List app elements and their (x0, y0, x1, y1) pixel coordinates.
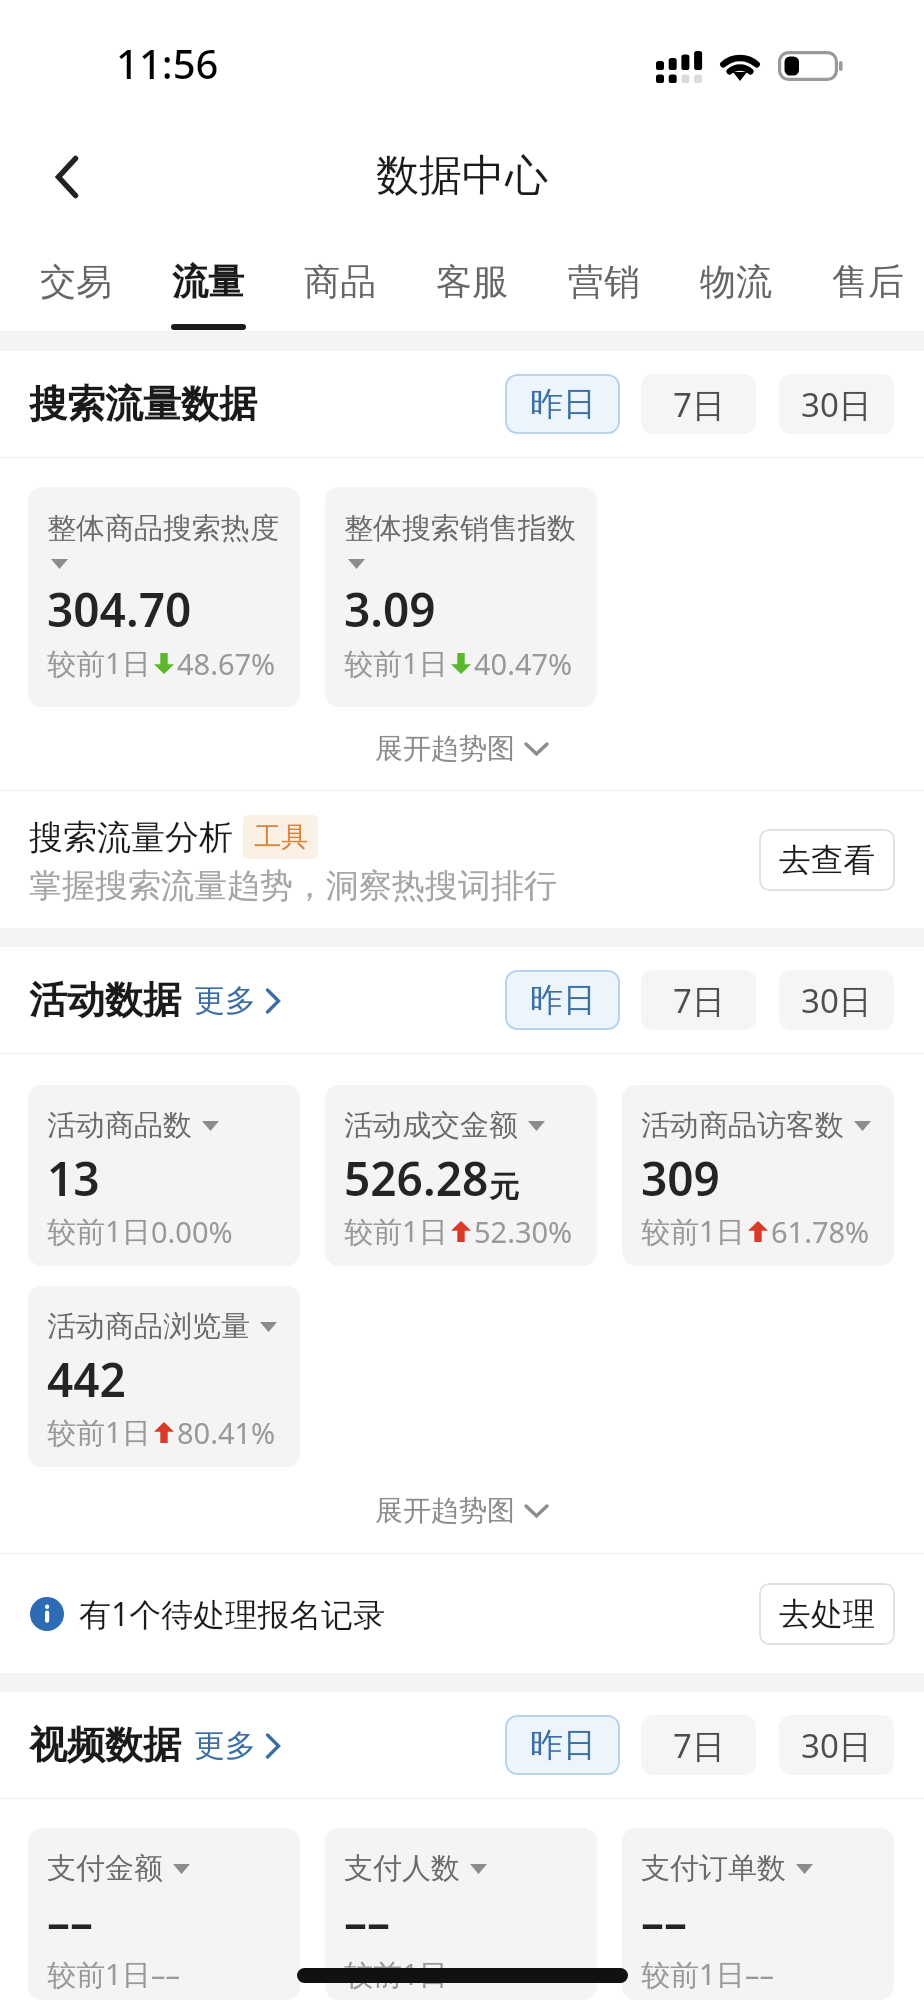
staticText: 309 (641, 1147, 720, 1210)
button[interactable]: 7日 (641, 374, 756, 434)
staticText: 11:56 (116, 36, 219, 90)
staticText: 展开趋势图 (375, 1493, 515, 1528)
button[interactable]: 昨日 (505, 970, 620, 1030)
button[interactable]: 客服 (424, 226, 520, 331)
button[interactable]: 流量 (160, 226, 256, 331)
button[interactable]: 支付订单数 (622, 1828, 894, 2000)
button[interactable]: 昨日 (505, 1715, 620, 1775)
staticText: 较前1日 (47, 1412, 151, 1452)
button[interactable]: 展开趋势图 (0, 707, 924, 790)
staticText: 掌握搜索流量趋势，洞察热搜词排行 (29, 865, 557, 907)
staticText: 较前1日 (344, 643, 448, 683)
button[interactable]: 活动商品访客数 (622, 1085, 894, 1266)
staticText: 去处理 (779, 1594, 875, 1634)
staticText: 支付人数 (344, 1850, 460, 1887)
staticText: –– (151, 1955, 181, 1994)
staticText: 526.28 (344, 1147, 489, 1210)
staticText: 支付订单数 (641, 1850, 786, 1887)
button[interactable]: 营销 (556, 226, 652, 331)
staticText: 较前1日 (47, 1211, 151, 1251)
staticText: –– (344, 1890, 390, 1953)
button[interactable]: 活动成交金额 (325, 1085, 597, 1266)
staticText: 商品 (304, 259, 376, 304)
button[interactable]: 7日 (641, 970, 756, 1030)
button[interactable]: 整体搜索销售指数 (325, 487, 597, 707)
staticText: –– (47, 1890, 93, 1953)
staticText: 13 (47, 1147, 100, 1210)
staticText: 有1个待处理报名记录 (79, 1592, 386, 1636)
button[interactable]: 活动商品浏览量 (28, 1286, 300, 1467)
staticText: –– (448, 1955, 478, 1994)
button[interactable]: 更多 (194, 1726, 281, 1765)
staticText: 80.41% (177, 1413, 276, 1452)
staticText: 较前1日 (641, 1211, 745, 1251)
button[interactable]: 支付人数 (325, 1828, 597, 2000)
staticText: 442 (47, 1348, 126, 1411)
staticText: 搜索流量分析 (29, 816, 233, 859)
staticText: 工具 (254, 820, 308, 854)
button[interactable]: 交易 (28, 226, 124, 331)
staticText: 搜索流量数据 (29, 380, 257, 428)
button[interactable]: 整体商品搜索热度 (28, 487, 300, 707)
staticText: 30日 (801, 1723, 872, 1768)
button[interactable]: 支付金额 (28, 1828, 300, 2000)
staticText: 活动商品数 (47, 1107, 192, 1144)
staticText: 52.30% (474, 1212, 573, 1251)
staticText: 活动数据 (29, 976, 181, 1024)
staticText: 交易 (40, 259, 112, 304)
button[interactable]: 30日 (779, 1715, 894, 1775)
staticText: –– (641, 1890, 687, 1953)
staticText: 48.67% (177, 644, 276, 683)
button[interactable]: 7日 (641, 1715, 756, 1775)
staticText: 40.47% (474, 644, 573, 683)
staticText: 61.78% (771, 1212, 870, 1251)
staticText: 昨日 (530, 1724, 596, 1766)
button[interactable]: 30日 (779, 374, 894, 434)
staticText: 活动商品浏览量 (47, 1308, 250, 1345)
staticText: 元 (489, 1168, 519, 1206)
staticText: 304.70 (47, 578, 192, 641)
staticText: 整体搜索销售指数 (344, 510, 576, 547)
staticText: 较前1日 (641, 1954, 745, 1994)
staticText: 更多 (194, 981, 256, 1020)
button[interactable]: 展开趋势图 (0, 1467, 924, 1553)
staticText: 展开趋势图 (375, 731, 515, 766)
staticText: 整体商品搜索热度 (47, 510, 279, 547)
button[interactable]: 物流 (688, 226, 784, 331)
staticText: 客服 (436, 259, 508, 304)
staticText: 30日 (801, 978, 872, 1023)
staticText: 7日 (673, 978, 725, 1023)
staticText: 营销 (568, 259, 640, 304)
staticText: 物流 (700, 259, 772, 304)
staticText: 流量 (172, 259, 244, 304)
staticText: 视频数据 (29, 1721, 181, 1769)
staticText: 30日 (801, 382, 872, 427)
staticText: 活动成交金额 (344, 1107, 518, 1144)
staticText: 较前1日 (47, 1954, 151, 1994)
button[interactable]: 去处理 (759, 1583, 895, 1645)
staticText: 0.00% (151, 1212, 233, 1251)
staticText: 更多 (194, 1726, 256, 1765)
button[interactable]: 30日 (779, 970, 894, 1030)
staticText: 售后 (832, 259, 904, 304)
button[interactable]: 更多 (194, 981, 281, 1020)
staticText: 较前1日 (344, 1954, 448, 1994)
button[interactable]: Back (22, 132, 112, 222)
staticText: 3.09 (344, 578, 436, 641)
staticText: –– (745, 1955, 775, 1994)
staticText: 数据中心 (376, 149, 548, 203)
staticText: 活动商品访客数 (641, 1107, 844, 1144)
staticText: 较前1日 (344, 1211, 448, 1251)
staticText: 支付金额 (47, 1850, 163, 1887)
button[interactable]: 昨日 (505, 374, 620, 434)
staticText: 7日 (673, 382, 725, 427)
staticText: 昨日 (530, 383, 596, 425)
button[interactable]: 活动商品数 (28, 1085, 300, 1266)
button[interactable]: 售后 (820, 226, 916, 331)
button[interactable]: 商品 (292, 226, 388, 331)
staticText: 较前1日 (47, 643, 151, 683)
button[interactable]: 去查看 (759, 829, 895, 891)
staticText: 7日 (673, 1723, 725, 1768)
staticText: 昨日 (530, 979, 596, 1021)
staticText: 去查看 (779, 840, 875, 880)
